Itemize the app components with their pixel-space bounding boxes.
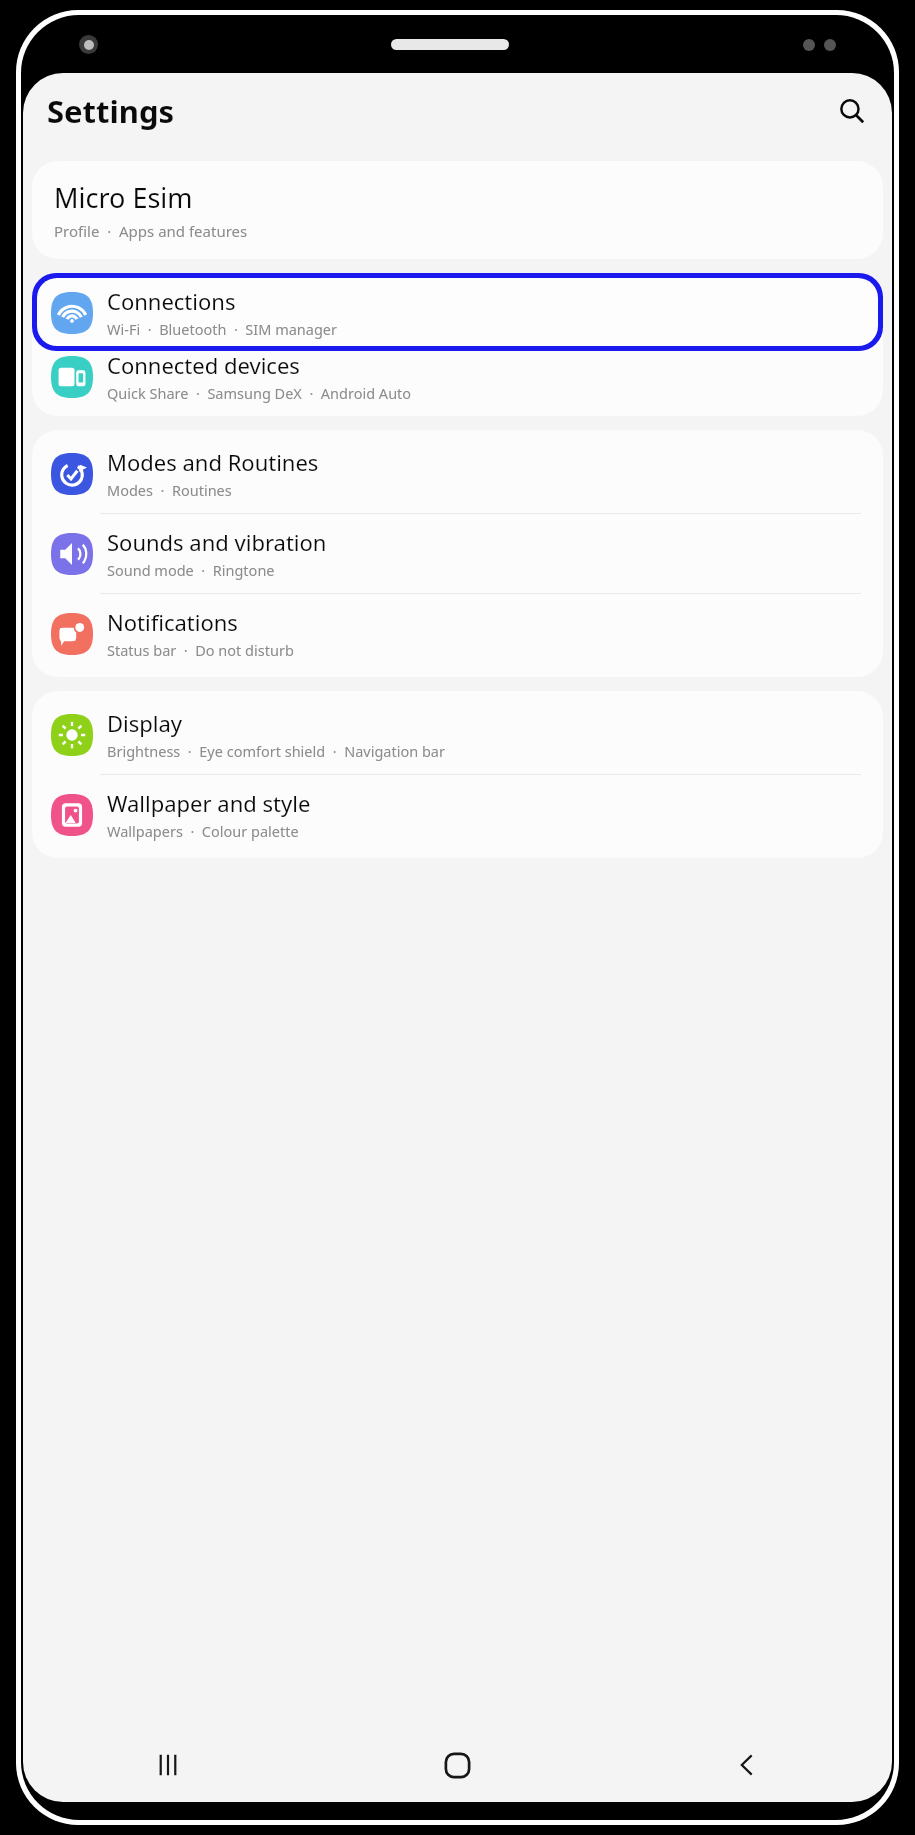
staticText: Wallpaper and style (107, 788, 311, 818)
staticText: Settings (47, 90, 175, 132)
staticText: Modes and Routines (107, 447, 319, 477)
staticText: Micro Esim (54, 179, 193, 216)
button[interactable]: Modes and Routines (32, 434, 883, 513)
button[interactable]: Connected devices (32, 337, 883, 416)
button[interactable]: Search settings (828, 87, 876, 135)
button[interactable]: Sounds and vibration (32, 514, 883, 593)
button[interactable]: Notifications (32, 594, 883, 673)
staticText: Wallpapers · Colour palette (107, 821, 299, 841)
staticText: Profile · Apps and features (54, 221, 248, 241)
staticText: Modes · Routines (107, 480, 232, 500)
staticText: Status bar · Do not disturb (107, 640, 294, 660)
staticText: Connected devices (107, 350, 300, 380)
button[interactable]: Back (602, 1728, 892, 1802)
staticText: Connections (107, 286, 236, 316)
staticText: Notifications (107, 607, 238, 637)
button[interactable]: Wallpaper and style (32, 775, 883, 854)
button[interactable]: Connections (32, 273, 883, 351)
button[interactable]: Recent apps (23, 1728, 312, 1802)
staticText: Display (107, 708, 183, 738)
staticText: Brightness · Eye comfort shield · Naviga… (107, 741, 445, 761)
button[interactable]: Home (312, 1728, 602, 1802)
staticText: Quick Share · Samsung DeX · Android Auto (107, 383, 412, 403)
staticText: Sounds and vibration (107, 527, 327, 557)
staticText: Sound mode · Ringtone (107, 560, 275, 580)
staticText: Wi-Fi · Bluetooth · SIM manager (107, 319, 338, 339)
button[interactable]: Display (32, 695, 883, 774)
button[interactable]: Micro Esim (32, 161, 883, 259)
